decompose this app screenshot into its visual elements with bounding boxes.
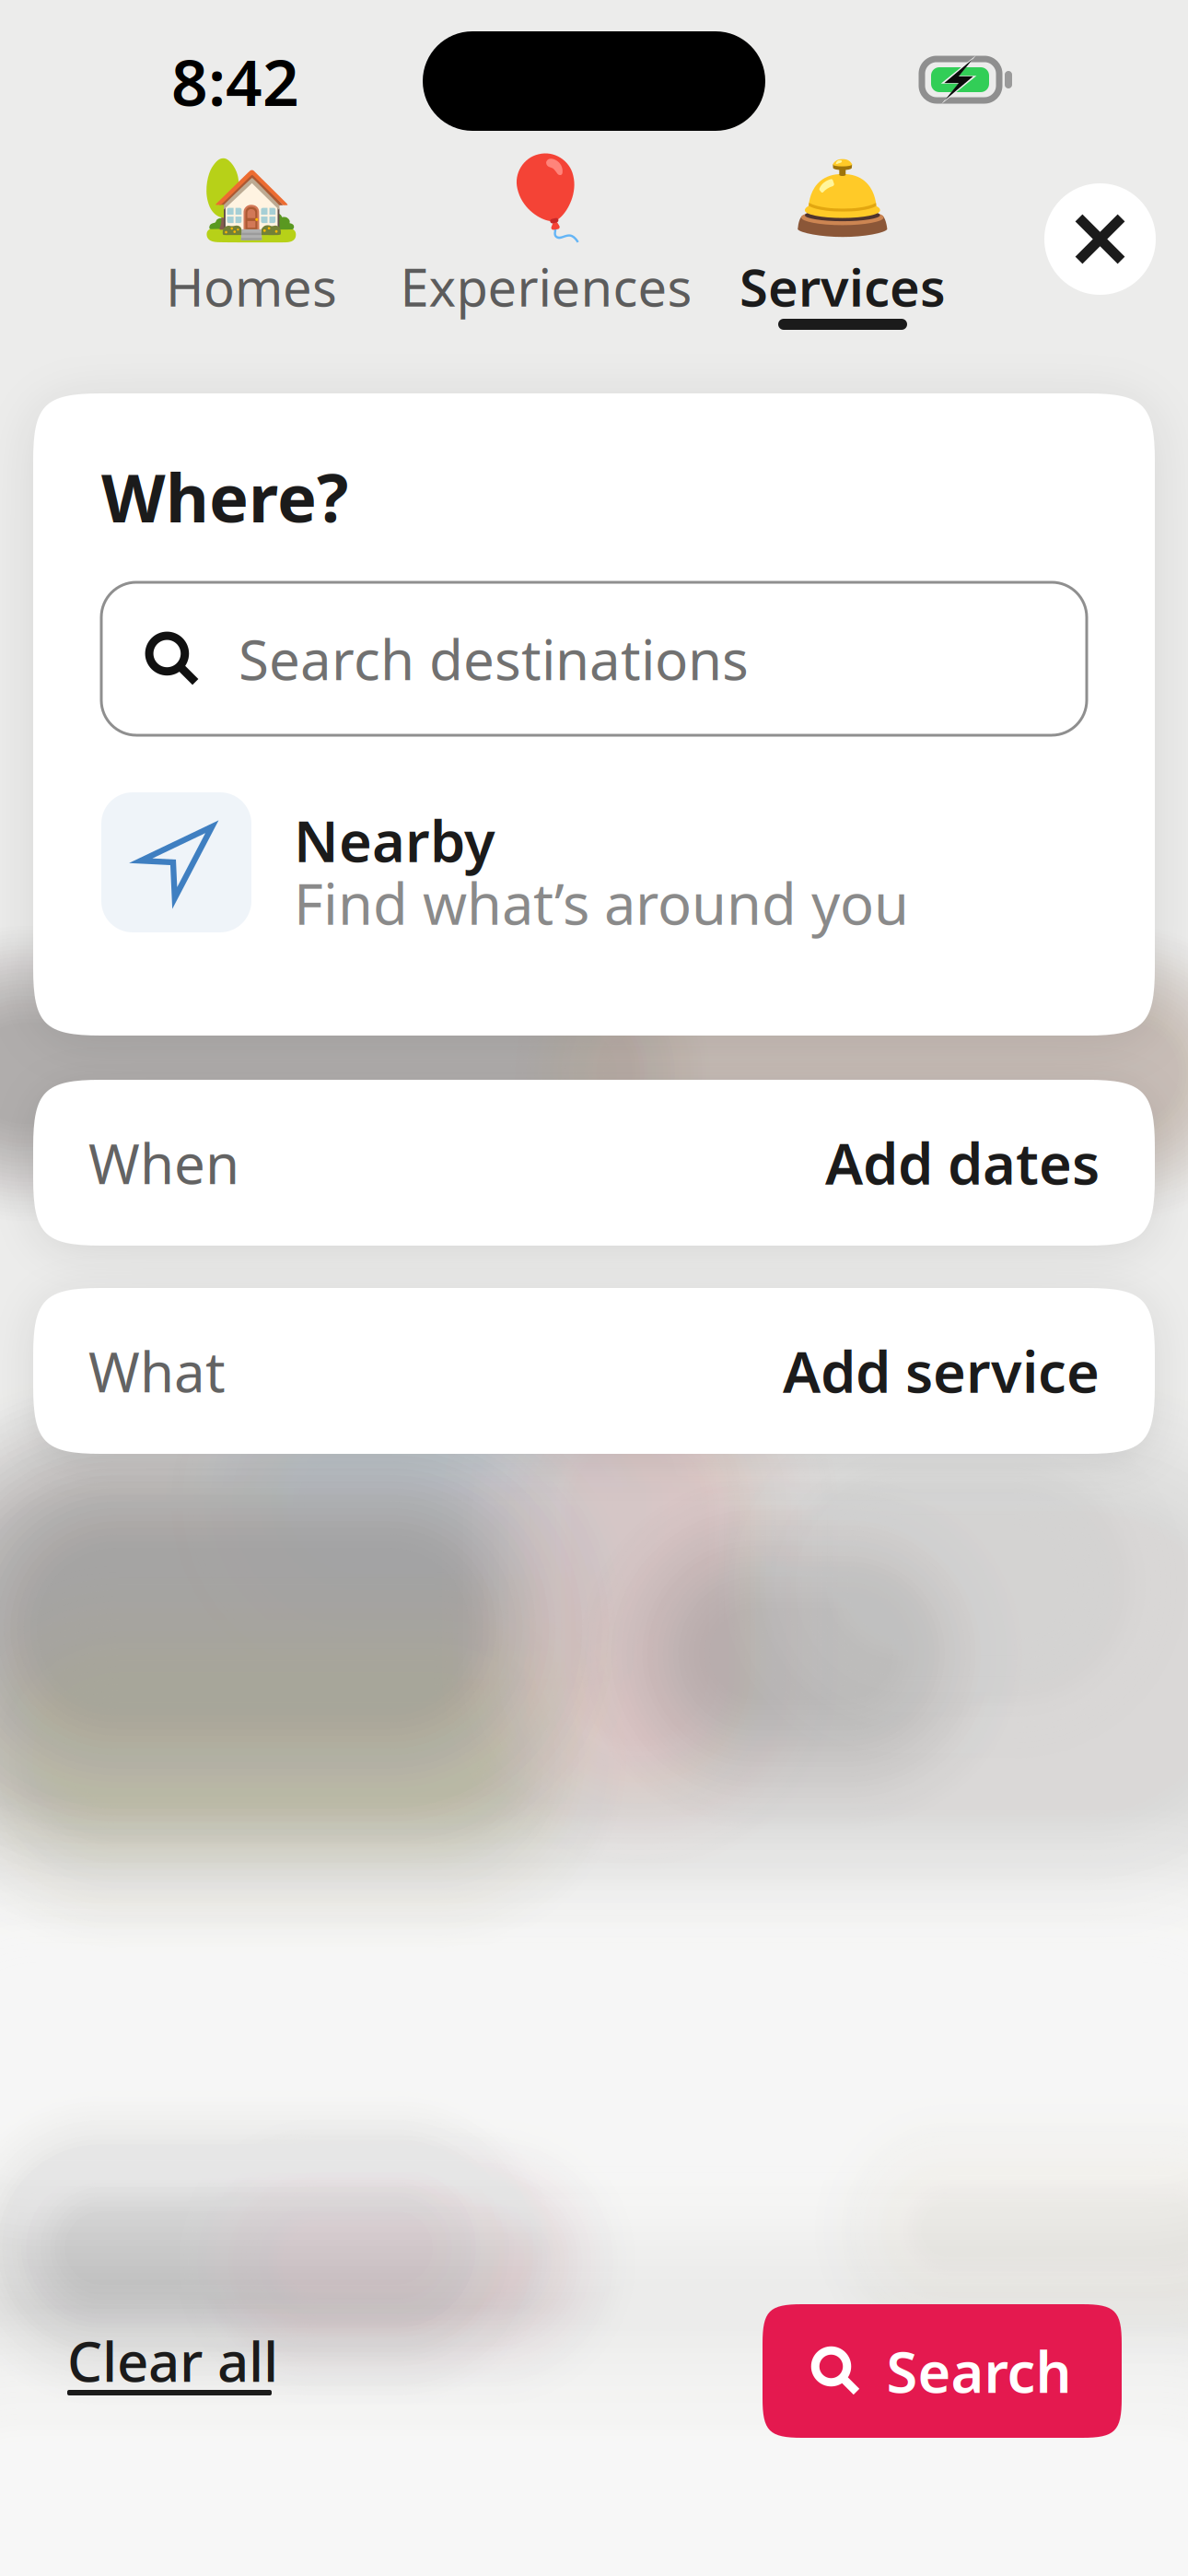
staticText: Add service <box>783 1333 1100 1408</box>
staticText: Services <box>740 252 946 321</box>
staticText: Homes <box>166 252 337 321</box>
staticText: Search <box>886 2334 1072 2409</box>
staticText: 🎈 <box>495 152 597 244</box>
staticText: 🛎️ <box>792 152 893 244</box>
staticText: Find what’s around you <box>294 865 909 940</box>
staticText: 🏡 <box>201 152 302 244</box>
staticText: Nearby <box>294 803 495 878</box>
button[interactable]: 🏡 <box>127 162 376 333</box>
button[interactable]: 🛎️ <box>718 162 967 333</box>
button[interactable]: Nearby <box>101 792 1087 932</box>
button[interactable]: When <box>33 1080 1155 1246</box>
button[interactable]: Clear all <box>67 2333 279 2397</box>
staticText: What <box>88 1334 226 1408</box>
button[interactable]: Search <box>763 2304 1122 2438</box>
staticText: Experiences <box>400 252 692 321</box>
staticText: 8:42 <box>171 39 299 124</box>
button[interactable]: Search destinations <box>101 582 1087 735</box>
staticText: Clear all <box>67 2324 278 2397</box>
staticText: Search destinations <box>239 622 749 696</box>
button[interactable]: What <box>33 1288 1155 1454</box>
button[interactable]: 🎈 <box>380 162 712 333</box>
staticText: Add dates <box>825 1125 1100 1200</box>
staticText: Where? <box>101 453 348 541</box>
button[interactable]: Close <box>1044 183 1156 295</box>
staticText: When <box>88 1126 239 1199</box>
